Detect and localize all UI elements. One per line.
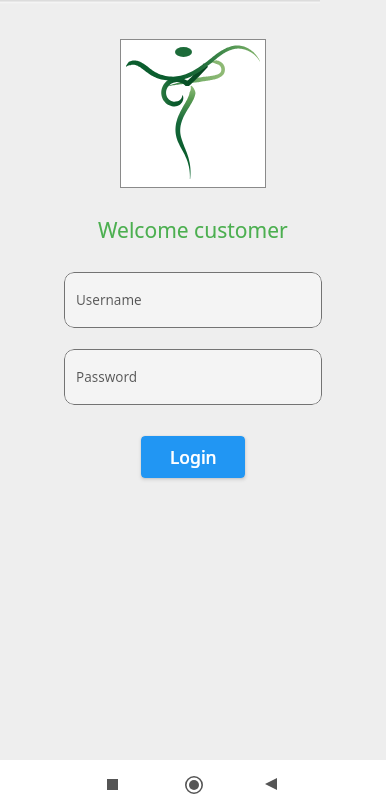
- button[interactable]: Back: [247, 768, 295, 800]
- button[interactable]: Recent apps: [88, 768, 136, 800]
- staticText: Welcome customer: [98, 216, 288, 245]
- button[interactable]: Login: [141, 436, 245, 478]
- button[interactable]: Username: [64, 272, 322, 328]
- staticText: Username: [76, 291, 142, 309]
- button[interactable]: Password: [64, 349, 322, 405]
- button[interactable]: Home: [170, 769, 218, 800]
- staticText: Login: [170, 445, 217, 469]
- staticText: Password: [76, 368, 138, 386]
